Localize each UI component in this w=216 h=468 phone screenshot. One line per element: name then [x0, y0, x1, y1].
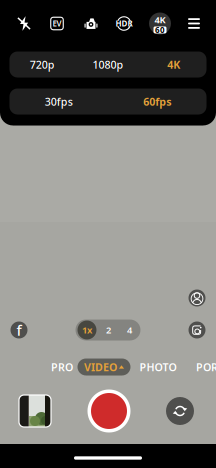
button[interactable]: 720p	[9, 51, 75, 77]
button[interactable]: VIDEO	[77, 358, 130, 375]
button[interactable]: 1x	[77, 320, 96, 339]
button[interactable]: HDR	[109, 8, 139, 38]
staticText: PRO	[51, 360, 73, 374]
button[interactable]: Filters	[188, 321, 205, 338]
staticText: PORTRAIT	[196, 360, 216, 374]
staticText: 1080p	[92, 57, 123, 72]
button[interactable]: Aperture	[10, 321, 27, 338]
staticText: 2	[106, 324, 111, 336]
staticText: f	[16, 320, 21, 340]
button[interactable]: 4	[121, 320, 137, 339]
button[interactable]: 4K	[141, 51, 206, 77]
button[interactable]: 60fps	[108, 88, 206, 114]
staticText: 720p	[30, 57, 55, 72]
staticText: EV	[52, 18, 61, 29]
button[interactable]: Portrait	[188, 289, 205, 306]
button[interactable]: Exposure compensation	[42, 8, 72, 38]
staticText: 1x	[82, 324, 92, 336]
button[interactable]: Flash off	[9, 8, 39, 38]
staticText: PHOTO	[139, 360, 176, 374]
button[interactable]: PHOTO	[138, 358, 178, 376]
staticText: 30fps	[45, 94, 73, 109]
staticText: VIDEO	[84, 360, 117, 374]
button[interactable]: Live photo	[76, 8, 106, 38]
staticText: 4K	[154, 14, 165, 26]
button[interactable]: 1080p	[75, 51, 141, 77]
staticText: 4K	[167, 57, 180, 72]
button[interactable]: 30fps	[9, 88, 108, 114]
staticText: HDR	[115, 18, 132, 29]
staticText: 4	[127, 324, 132, 336]
button[interactable]: Photo library	[19, 395, 51, 427]
button[interactable]: Record	[87, 389, 130, 432]
button[interactable]: PRO	[45, 358, 79, 376]
staticText: 60fps	[143, 94, 171, 109]
button[interactable]: PORTRAIT	[196, 358, 216, 376]
button[interactable]: Video quality, 4K 60	[149, 12, 171, 34]
staticText: 60	[155, 25, 165, 35]
button[interactable]: Flip camera	[166, 397, 194, 425]
button[interactable]: More options	[179, 8, 209, 38]
button[interactable]: 2	[100, 320, 116, 339]
